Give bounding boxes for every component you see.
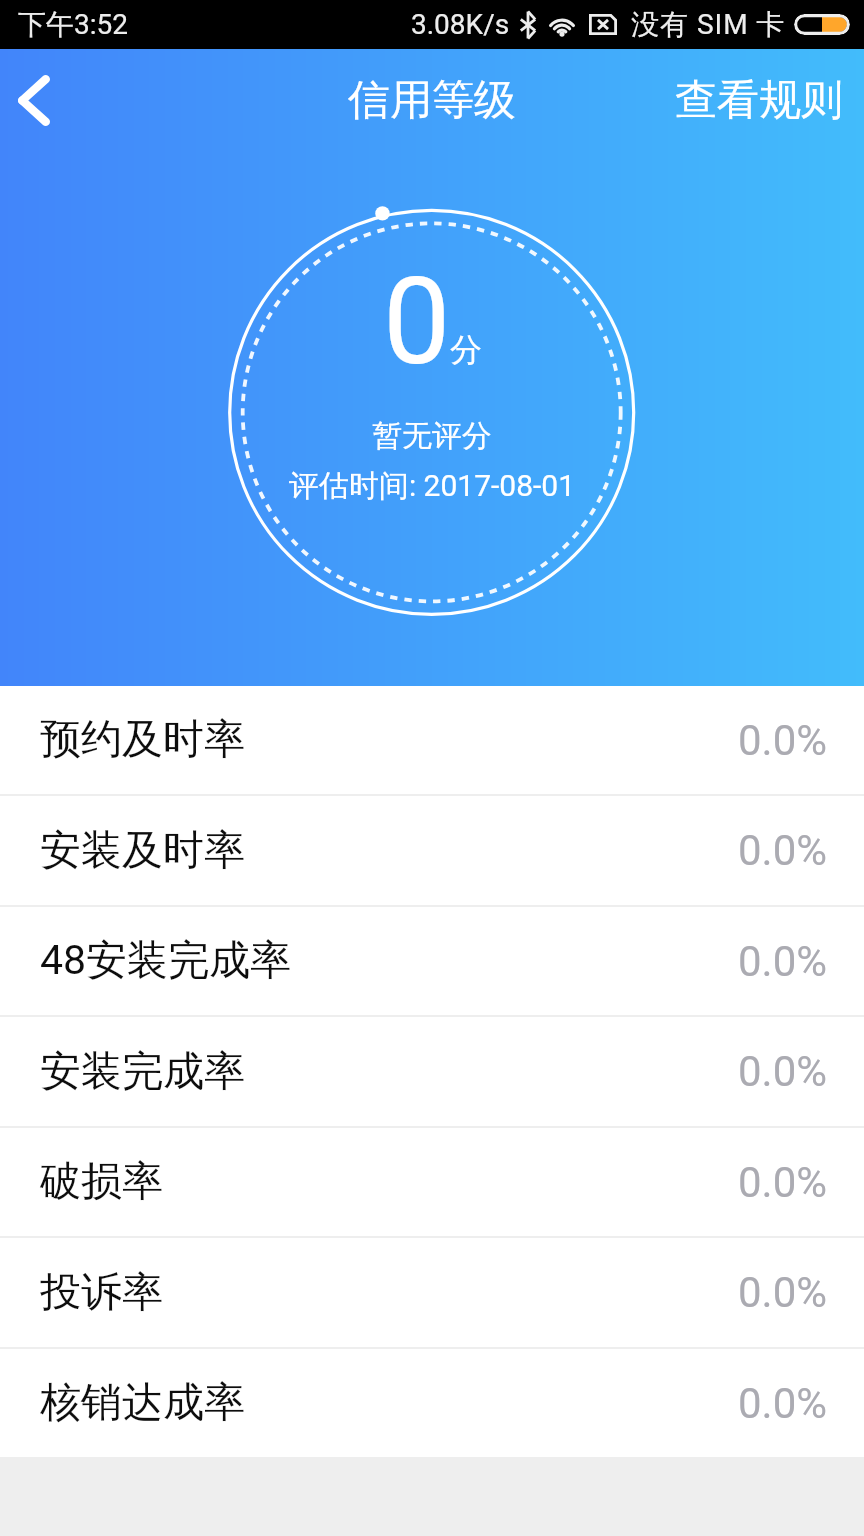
- staticText: 0.0%: [738, 1047, 828, 1096]
- staticText: 48安装完成率: [40, 935, 292, 987]
- staticText: 核销达成率: [40, 1377, 245, 1429]
- staticText: 下午3:52: [18, 7, 128, 42]
- staticText: 破损率: [40, 1156, 163, 1208]
- button[interactable]: 查看规则: [651, 49, 864, 151]
- staticText: 评估时间: 2017-08-01: [0, 467, 864, 505]
- staticText: 0: [383, 252, 451, 393]
- staticText: 没有 SIM 卡: [631, 7, 786, 42]
- button[interactable]: Back: [0, 49, 92, 151]
- staticText: 查看规则: [675, 74, 843, 127]
- staticText: 分: [450, 330, 482, 370]
- staticText: 0.0%: [738, 716, 828, 765]
- staticText: 预约及时率: [40, 714, 245, 766]
- button[interactable]: 安装完成率: [0, 1017, 864, 1128]
- staticText: 0.0%: [738, 826, 828, 875]
- staticText: 投诉率: [40, 1267, 163, 1319]
- staticText: 0.0%: [738, 1268, 828, 1317]
- button[interactable]: 破损率: [0, 1128, 864, 1238]
- staticText: 0.0%: [738, 937, 828, 986]
- button[interactable]: 投诉率: [0, 1238, 864, 1349]
- button[interactable]: 核销达成率: [0, 1349, 864, 1459]
- staticText: 0.0%: [738, 1158, 828, 1207]
- staticText: 暂无评分: [0, 417, 864, 455]
- staticText: 信用等级: [348, 74, 516, 127]
- staticText: 安装完成率: [40, 1046, 245, 1098]
- button[interactable]: 预约及时率: [0, 686, 864, 796]
- staticText: 3.08K/s: [411, 8, 510, 41]
- staticText: 0.0%: [738, 1379, 828, 1428]
- button[interactable]: 48安装完成率: [0, 907, 864, 1017]
- staticText: 安装及时率: [40, 825, 245, 877]
- button[interactable]: 安装及时率: [0, 796, 864, 907]
